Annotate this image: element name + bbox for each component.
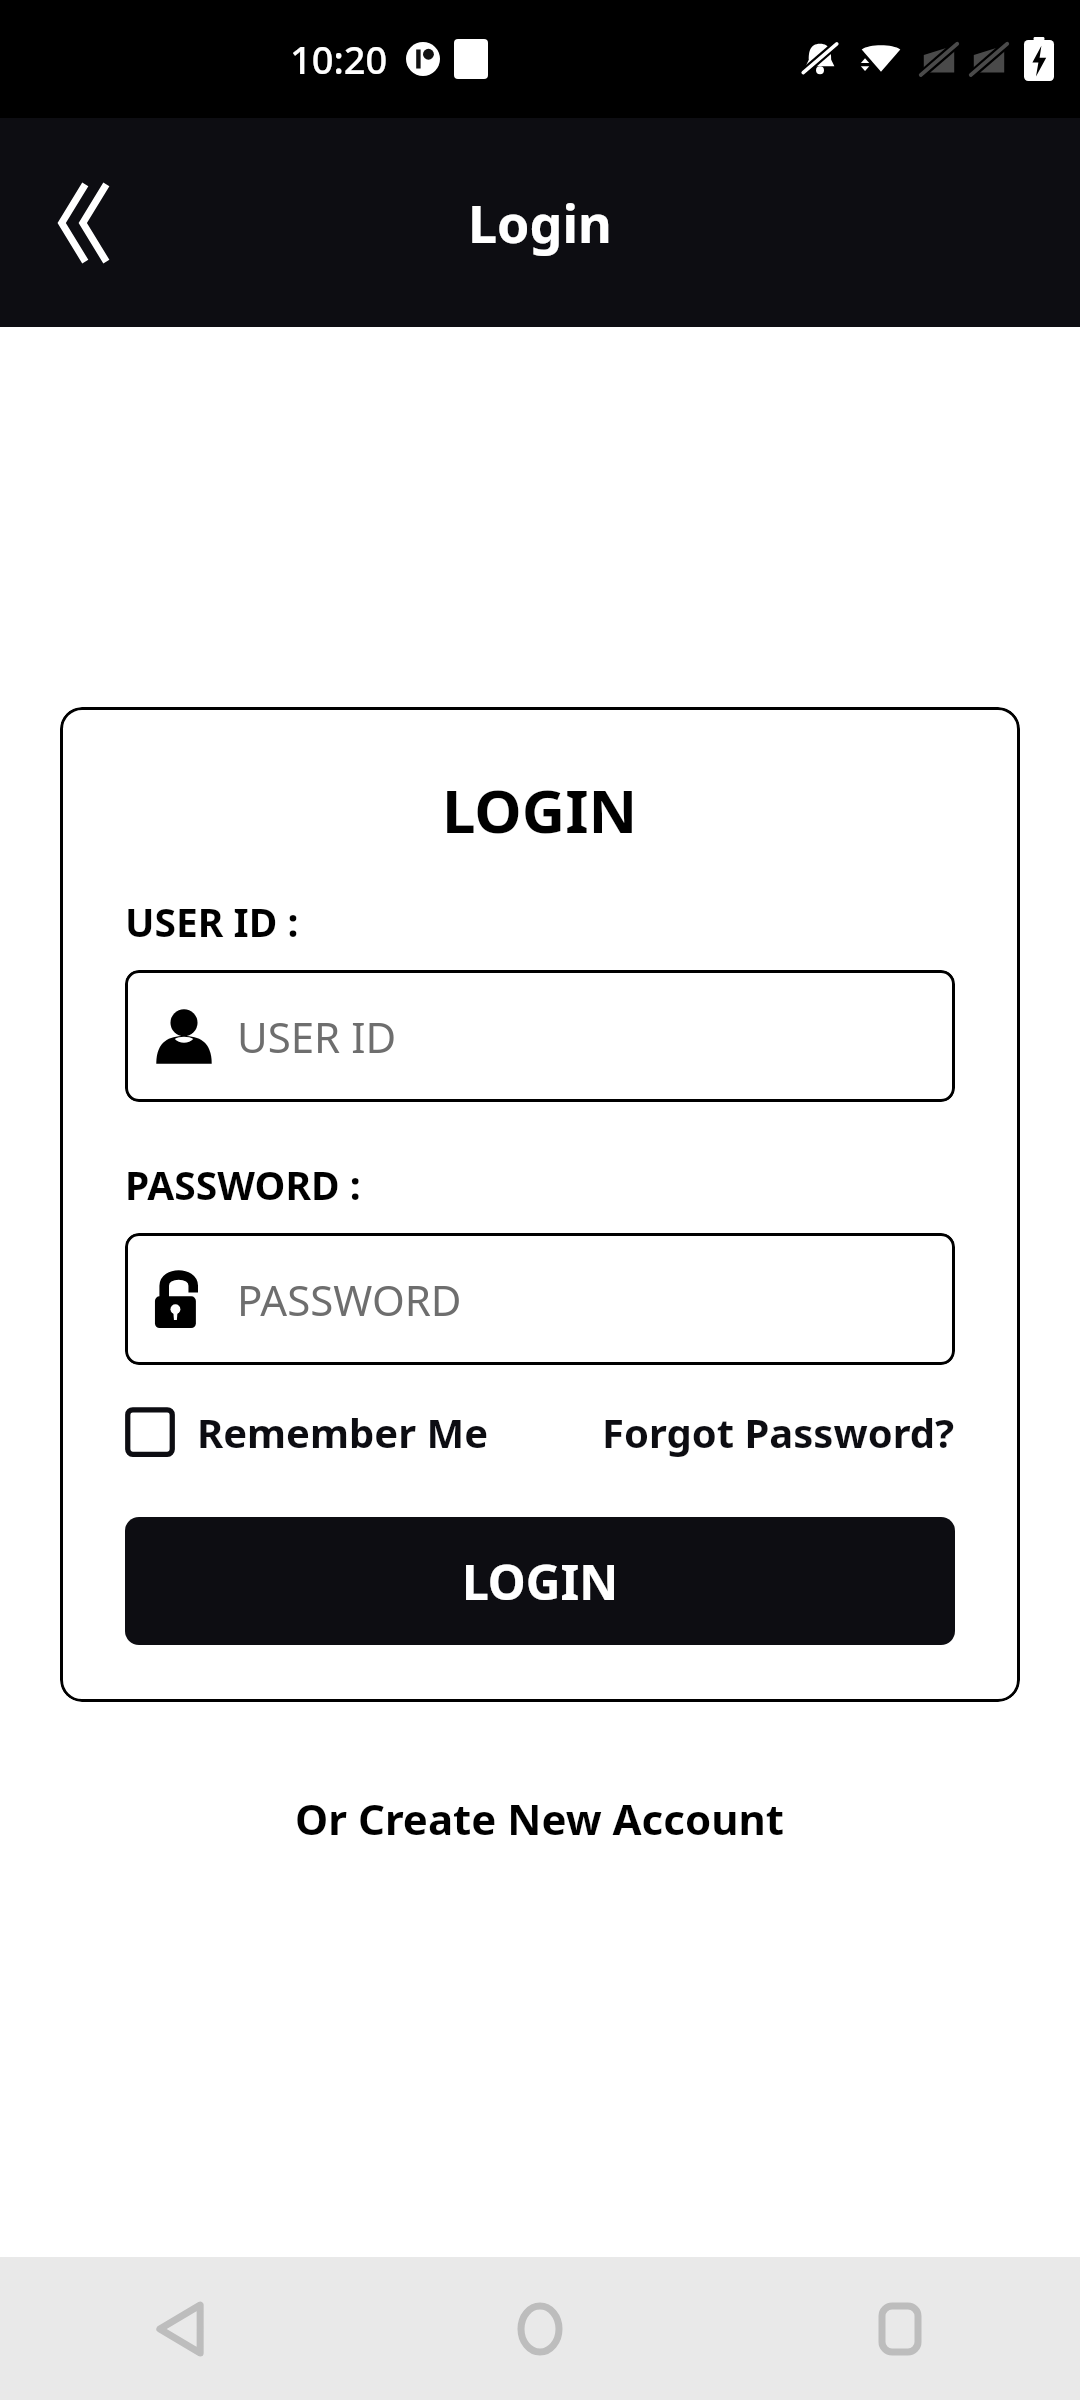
staticText: LOGIN (442, 769, 638, 851)
staticText: USER ID : (125, 895, 299, 948)
button[interactable]: Remember Me (125, 1405, 489, 1459)
staticText: Or Create New Account (295, 1790, 785, 1847)
button[interactable]: Recent apps (720, 2257, 1080, 2400)
button[interactable]: USER ID (125, 970, 955, 1102)
button[interactable]: Home (360, 2257, 720, 2400)
staticText: 10:20 (290, 33, 388, 85)
staticText: PASSWORD (237, 1271, 462, 1328)
button[interactable]: Back (0, 2257, 360, 2400)
button[interactable]: LOGIN (125, 1517, 955, 1645)
staticText: Remember Me (197, 1405, 489, 1459)
staticText: LOGIN (462, 1549, 619, 1614)
button[interactable]: Or Create New Account (0, 1790, 1080, 1847)
staticText: USER ID (237, 1008, 397, 1065)
staticText: Login (468, 187, 612, 258)
button[interactable]: PASSWORD (125, 1233, 955, 1365)
staticText: Forgot Password? (602, 1405, 955, 1459)
button[interactable]: Back (34, 168, 144, 278)
button[interactable]: Forgot Password? (602, 1405, 955, 1459)
staticText: PASSWORD : (125, 1158, 361, 1211)
